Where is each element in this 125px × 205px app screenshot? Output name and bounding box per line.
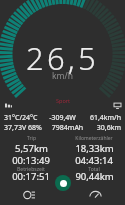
staticText: 68% <box>28 123 48 133</box>
staticText: 30,6km <box>87 123 121 133</box>
staticText: 7984mAh <box>48 123 87 133</box>
staticText: -309,4W <box>43 113 82 123</box>
staticText: Trip <box>27 135 36 142</box>
staticText: Betriebszeit <box>17 166 45 173</box>
button[interactable]: Power <box>55 175 71 191</box>
staticText: 31°C/24°C <box>4 113 43 123</box>
staticText: 18,33km <box>75 142 114 155</box>
staticText: 00:17:51 <box>12 170 50 183</box>
staticText: 00:13:49 <box>12 154 50 167</box>
staticText: 90,44km <box>75 170 114 183</box>
staticText: Kilometerzähler <box>75 135 113 142</box>
staticText: 37,73V <box>4 123 28 133</box>
button[interactable]: Headlight <box>19 185 39 205</box>
staticText: 61,4km/h <box>82 113 121 123</box>
staticText: km/h <box>52 70 73 82</box>
staticText: 04:43:14 <box>75 154 113 167</box>
staticText: 26,5 <box>26 37 99 79</box>
button[interactable]: Dashboard <box>85 185 105 205</box>
staticText: 5,57km <box>15 142 48 155</box>
staticText: Total <box>88 166 100 173</box>
staticText: Sport <box>56 97 70 104</box>
